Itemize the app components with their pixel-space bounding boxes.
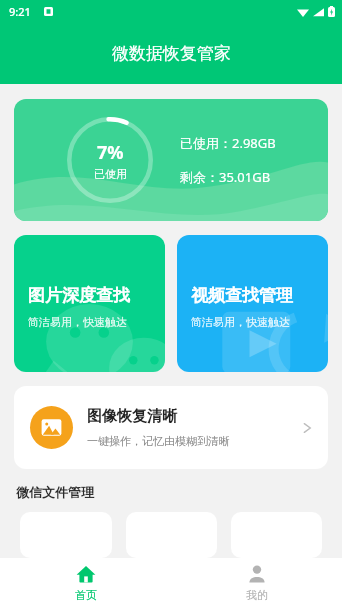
staticText: 微信文件管理	[16, 484, 94, 500]
button[interactable]: 我的	[171, 558, 342, 608]
staticText: 图像恢复清晰	[87, 407, 177, 426]
staticText: 图片深度查找	[28, 285, 130, 306]
staticText: 已使用	[94, 167, 127, 181]
button[interactable]: 7%	[14, 99, 328, 221]
staticText: 9:21	[9, 4, 31, 19]
staticText: 已使用：2.98GB	[180, 134, 276, 152]
button[interactable]: 视频查找管理	[177, 235, 328, 372]
staticText: 我的	[246, 588, 268, 602]
staticText: 7%	[97, 140, 124, 165]
staticText: 剩余：35.01GB	[180, 168, 271, 186]
button[interactable]: 图片深度查找	[14, 235, 165, 372]
staticText: 简洁易用，快速触达	[28, 315, 127, 329]
button[interactable]: 首页	[0, 558, 171, 608]
staticText: 首页	[75, 588, 97, 602]
staticText: 视频查找管理	[191, 285, 293, 306]
staticText: 微数据恢复管家	[112, 43, 231, 64]
staticText: 一键操作，记忆由模糊到清晰	[87, 434, 230, 448]
button[interactable]: 图像恢复清晰	[14, 386, 328, 469]
staticText: 简洁易用，快速触达	[191, 315, 290, 329]
